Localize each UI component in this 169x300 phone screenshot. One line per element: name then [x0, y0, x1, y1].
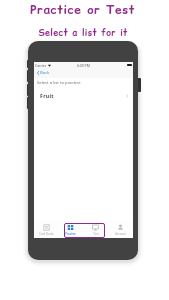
button[interactable]: Back: [37, 68, 133, 78]
staticText: Account: [115, 232, 126, 236]
staticText: Test: [93, 232, 99, 236]
staticText: Fruit: [40, 92, 54, 99]
button[interactable]: Practice: [58, 224, 83, 236]
button[interactable]: Account: [108, 224, 133, 236]
staticText: Back: [40, 70, 50, 76]
staticText: Select a list to practice: [37, 80, 81, 86]
staticText: Practice or Test: [30, 1, 135, 18]
button[interactable]: Fruit: [40, 90, 128, 101]
staticText: Select a list for it: [38, 27, 128, 40]
staticText: Carrier: [35, 63, 47, 68]
button[interactable]: Test: [83, 224, 108, 236]
staticText: Practice: [65, 232, 76, 236]
staticText: Card Decks: [39, 232, 54, 236]
button[interactable]: Card Decks: [34, 224, 58, 236]
staticText: 6:00 PM: [77, 63, 90, 68]
